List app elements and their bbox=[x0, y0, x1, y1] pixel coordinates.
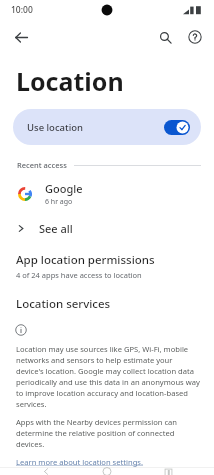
staticText: Location may use sources like GPS, Wi-Fi… bbox=[16, 344, 201, 409]
staticText: Location services bbox=[16, 296, 111, 312]
button[interactable]: Home bbox=[92, 468, 122, 475]
staticText: Learn more about location settings. bbox=[16, 457, 144, 467]
staticText: 6 hr ago bbox=[45, 197, 73, 207]
button[interactable]: Back bbox=[6, 22, 36, 52]
button[interactable]: Location services bbox=[0, 294, 214, 314]
staticText: Use location bbox=[27, 121, 83, 134]
button[interactable]: Search bbox=[151, 23, 179, 51]
button[interactable]: Google bbox=[0, 177, 214, 211]
staticText: Apps with the Nearby devices permission … bbox=[16, 417, 201, 449]
staticText: 4 of 24 apps have access to location bbox=[16, 270, 142, 280]
button[interactable]: Help bbox=[181, 23, 209, 51]
button[interactable]: Use location bbox=[13, 109, 201, 145]
staticText: Recent access bbox=[17, 160, 67, 170]
button[interactable]: Back bbox=[31, 468, 61, 475]
staticText: Location bbox=[16, 64, 124, 98]
button[interactable]: See all bbox=[0, 215, 214, 241]
button[interactable]: App location permissions bbox=[0, 250, 214, 282]
staticText: See all bbox=[39, 221, 73, 236]
staticText: Google bbox=[45, 181, 83, 196]
staticText: 10:00 bbox=[11, 4, 33, 16]
button[interactable]: Learn more about location settings. bbox=[16, 457, 144, 467]
staticText: App location permissions bbox=[16, 252, 155, 268]
button[interactable]: Recent apps bbox=[153, 468, 183, 475]
